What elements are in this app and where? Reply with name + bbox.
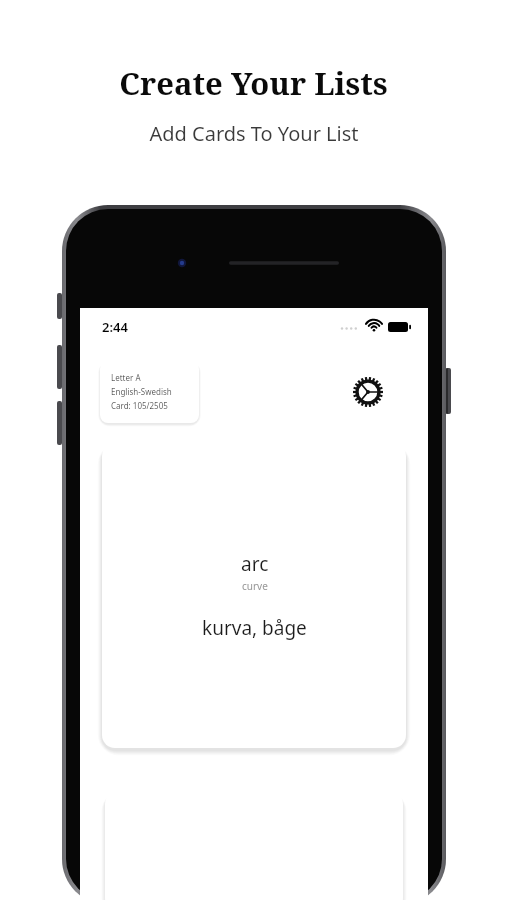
staticText: Card: 105/2505 [111, 400, 168, 411]
staticText: Letter A [111, 372, 141, 383]
staticText: Add Cards To Your List [149, 120, 359, 147]
staticText: arc [241, 551, 269, 577]
button[interactable]: arc [102, 443, 406, 748]
staticText: curve [242, 579, 268, 593]
staticText: Create Your Lists [119, 62, 388, 104]
button[interactable]: Settings [347, 371, 389, 413]
staticText: 2:44 [102, 318, 128, 336]
button[interactable]: Letter A [100, 361, 199, 423]
staticText: English-Swedish [111, 386, 172, 397]
staticText: kurva, båge [202, 615, 307, 641]
